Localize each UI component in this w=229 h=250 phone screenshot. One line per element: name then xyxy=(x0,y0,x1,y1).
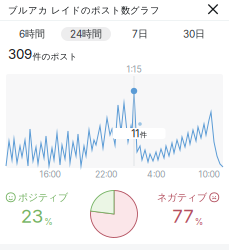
staticText: 23 xyxy=(21,205,44,227)
staticText: 1:15 xyxy=(126,64,141,74)
staticText: 6時間 xyxy=(19,28,45,40)
staticText: 7日 xyxy=(132,28,148,40)
staticText: 77 xyxy=(172,205,194,227)
button[interactable]: 24時間 xyxy=(59,25,113,43)
staticText: % xyxy=(195,217,204,227)
staticText: 10:00 xyxy=(198,169,219,179)
staticText: 4:00 xyxy=(147,169,165,179)
staticText: 309 xyxy=(8,46,32,62)
staticText: 22:00 xyxy=(95,169,117,179)
staticText: ネガティブ xyxy=(157,191,207,204)
button[interactable]: 30日 xyxy=(167,25,221,43)
staticText: 24時間 xyxy=(70,28,102,40)
staticText: ポジティブ xyxy=(18,191,68,204)
staticText: ブルアカ レイドのポスト数グラフ xyxy=(8,4,160,16)
button[interactable]: 閉じる xyxy=(202,0,224,21)
staticText: 16:00 xyxy=(39,169,60,179)
staticText: % xyxy=(44,217,53,227)
button[interactable]: 6時間 xyxy=(5,25,59,43)
button[interactable]: 7日 xyxy=(113,25,167,43)
staticText: 11 xyxy=(131,127,139,140)
staticText: 件 xyxy=(140,130,147,139)
staticText: 30日 xyxy=(183,28,205,40)
staticText: 件のポスト xyxy=(32,51,77,62)
